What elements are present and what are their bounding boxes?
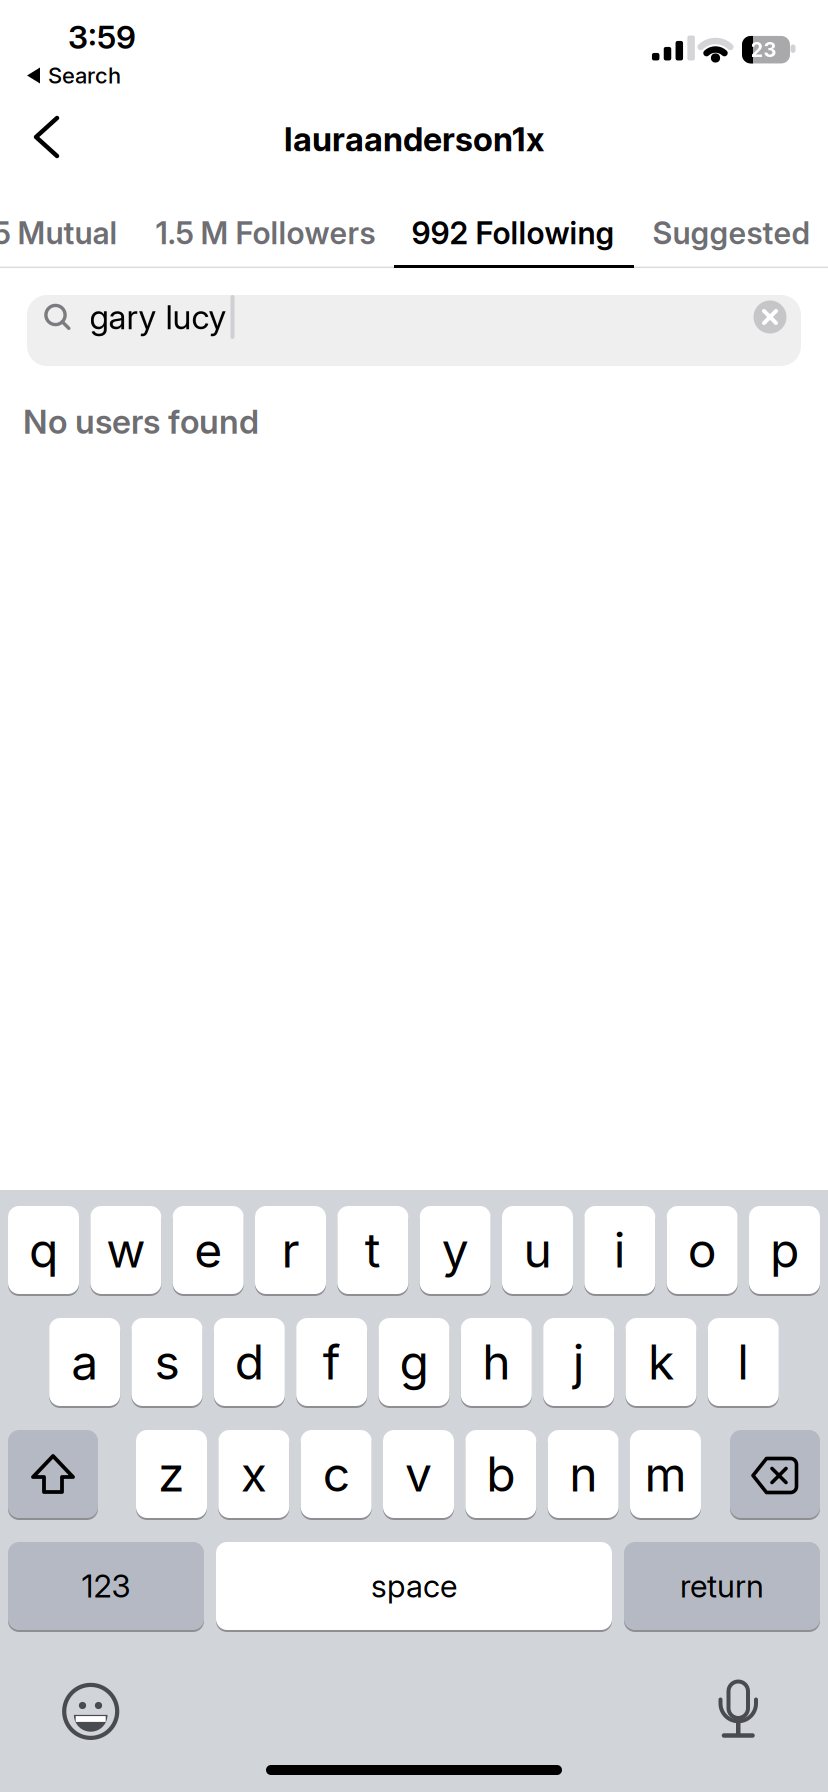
staticText: b bbox=[486, 1445, 515, 1503]
button[interactable]: x bbox=[218, 1430, 289, 1518]
staticText: g bbox=[399, 1333, 428, 1391]
staticText: l bbox=[737, 1333, 749, 1391]
button[interactable]: o bbox=[667, 1206, 738, 1294]
button[interactable]: u bbox=[502, 1206, 573, 1294]
staticText: 123 bbox=[81, 1567, 130, 1605]
button[interactable]: y bbox=[420, 1206, 491, 1294]
staticText: Suggested bbox=[652, 214, 810, 251]
button[interactable]: e bbox=[173, 1206, 244, 1294]
button[interactable]: l bbox=[708, 1318, 779, 1406]
button[interactable]: Back bbox=[24, 107, 68, 167]
staticText: p bbox=[770, 1221, 799, 1279]
staticText: 23 bbox=[750, 38, 776, 62]
staticText: e bbox=[194, 1221, 222, 1279]
button[interactable]: a bbox=[49, 1318, 120, 1406]
button[interactable]: s bbox=[131, 1318, 202, 1406]
staticText: Search bbox=[48, 62, 121, 89]
button[interactable]: Back to Search bbox=[27, 62, 121, 89]
staticText: m bbox=[644, 1445, 686, 1503]
staticText: 5 Mutual bbox=[0, 214, 117, 251]
button[interactable]: q bbox=[8, 1206, 79, 1294]
button[interactable]: 1.5 M Followers bbox=[155, 214, 375, 251]
staticText: d bbox=[235, 1333, 264, 1391]
staticText: f bbox=[323, 1333, 341, 1391]
button[interactable]: Shift bbox=[8, 1430, 98, 1518]
staticText: y bbox=[442, 1221, 469, 1279]
staticText: 3:59 bbox=[68, 18, 136, 56]
button[interactable]: j bbox=[543, 1318, 614, 1406]
staticText: return bbox=[680, 1567, 764, 1605]
button[interactable]: return bbox=[624, 1542, 820, 1630]
staticText: r bbox=[281, 1221, 299, 1279]
button[interactable]: space bbox=[216, 1542, 612, 1630]
button[interactable]: 5 Mutual bbox=[0, 214, 117, 251]
staticText: x bbox=[241, 1445, 267, 1503]
button[interactable]: r bbox=[255, 1206, 326, 1294]
button[interactable]: Clear search bbox=[753, 300, 786, 333]
button[interactable]: Dictate bbox=[708, 1673, 768, 1743]
button[interactable]: k bbox=[625, 1318, 696, 1406]
button[interactable]: i bbox=[584, 1206, 655, 1294]
staticText: t bbox=[365, 1221, 381, 1279]
staticText: o bbox=[688, 1221, 717, 1279]
staticText: u bbox=[523, 1221, 551, 1279]
staticText: space bbox=[371, 1567, 457, 1605]
staticText: n bbox=[569, 1445, 597, 1503]
button[interactable]: 992 Following bbox=[411, 214, 614, 251]
staticText: v bbox=[405, 1445, 432, 1503]
button[interactable]: h bbox=[461, 1318, 532, 1406]
button[interactable]: w bbox=[90, 1206, 161, 1294]
staticText: 992 Following bbox=[411, 214, 614, 251]
staticText: z bbox=[158, 1445, 185, 1503]
staticText: j bbox=[573, 1333, 585, 1391]
button[interactable]: p bbox=[749, 1206, 820, 1294]
button[interactable]: n bbox=[548, 1430, 619, 1518]
staticText: No users found bbox=[23, 401, 259, 442]
button[interactable]: z bbox=[136, 1430, 207, 1518]
button[interactable]: v bbox=[383, 1430, 454, 1518]
button[interactable]: g bbox=[378, 1318, 449, 1406]
button[interactable]: 123 bbox=[8, 1542, 204, 1630]
button[interactable]: Emoji bbox=[61, 1681, 121, 1741]
staticText: lauraanderson1x bbox=[284, 119, 544, 159]
staticText: k bbox=[648, 1333, 674, 1391]
button[interactable]: t bbox=[337, 1206, 408, 1294]
staticText: h bbox=[482, 1333, 510, 1391]
button[interactable]: Suggested bbox=[652, 214, 810, 251]
button[interactable]: m bbox=[630, 1430, 701, 1518]
staticText: i bbox=[614, 1221, 626, 1279]
button[interactable]: f bbox=[296, 1318, 367, 1406]
staticText: c bbox=[323, 1445, 350, 1503]
staticText: a bbox=[71, 1333, 98, 1391]
button[interactable]: Delete bbox=[730, 1430, 820, 1518]
button[interactable]: d bbox=[214, 1318, 285, 1406]
button[interactable]: b bbox=[465, 1430, 536, 1518]
button[interactable]: Search bbox=[27, 295, 801, 366]
staticText: q bbox=[29, 1221, 58, 1279]
staticText: 1.5 M Followers bbox=[155, 214, 375, 251]
button[interactable]: c bbox=[301, 1430, 372, 1518]
staticText: s bbox=[154, 1333, 179, 1391]
staticText: w bbox=[106, 1221, 145, 1279]
staticText: gary lucy bbox=[89, 297, 226, 337]
